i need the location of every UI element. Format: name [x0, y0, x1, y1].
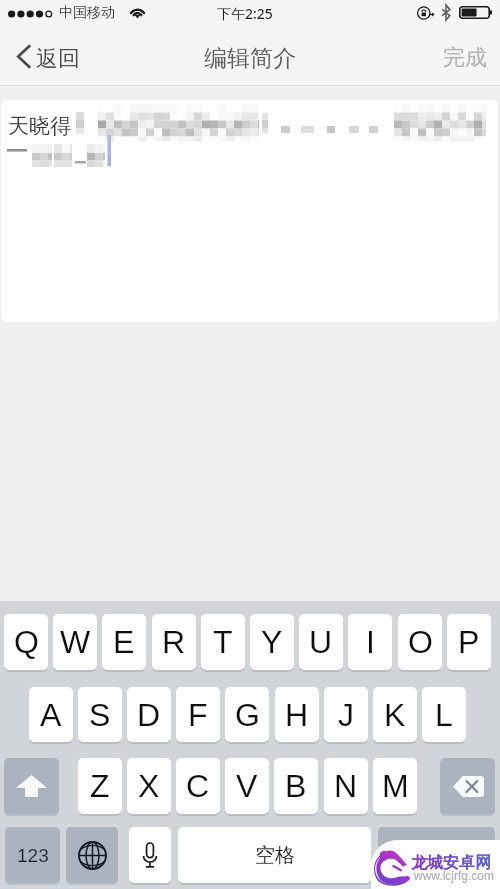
staticText: Y	[261, 624, 283, 660]
staticText: N	[334, 768, 358, 804]
button[interactable]: F	[176, 687, 220, 742]
staticText: V	[236, 768, 258, 804]
staticText: 龙城安卓网	[411, 853, 491, 873]
staticText: 完成	[443, 44, 487, 72]
button[interactable]: S	[78, 687, 122, 742]
staticText: S	[89, 697, 111, 733]
staticText: P	[458, 624, 480, 660]
staticText: E	[113, 624, 135, 660]
staticText: 天晓得	[8, 113, 71, 139]
staticText: D	[137, 697, 161, 733]
button[interactable]: Q	[4, 614, 48, 670]
staticText: 123	[17, 845, 49, 866]
button[interactable]: L	[422, 687, 466, 742]
staticText: 返回	[36, 45, 80, 73]
button[interactable]: U	[299, 614, 343, 670]
button[interactable]: Shift	[4, 758, 59, 814]
button[interactable]: Voice input	[129, 827, 171, 883]
staticText: T	[213, 624, 233, 660]
button[interactable]: W	[53, 614, 97, 670]
button[interactable]: G	[225, 687, 269, 742]
button[interactable]: N	[324, 758, 368, 814]
staticText: F	[188, 697, 208, 733]
staticText: 中国移动	[59, 4, 115, 22]
button[interactable]: Back	[0, 31, 86, 85]
button[interactable]: O	[398, 614, 442, 670]
button[interactable]: 天晓得	[1, 100, 498, 322]
staticText: 下午2:25	[217, 4, 273, 23]
staticText: K	[384, 697, 406, 733]
staticText: A	[40, 697, 62, 733]
staticText: W	[60, 624, 91, 660]
button[interactable]: 123	[5, 827, 60, 883]
staticText: L	[435, 697, 453, 733]
staticText: 编辑简介	[204, 44, 296, 73]
button[interactable]: 空格	[178, 827, 371, 883]
staticText: C	[186, 768, 210, 804]
staticText: U	[309, 624, 333, 660]
button[interactable]: A	[29, 687, 73, 742]
staticText: H	[285, 697, 309, 733]
staticText: www.lcjrfg.com	[414, 869, 495, 882]
button[interactable]: B	[274, 758, 318, 814]
button[interactable]: 完成	[428, 31, 500, 85]
staticText: B	[285, 768, 307, 804]
button[interactable]: Y	[250, 614, 294, 670]
staticText: G	[235, 697, 260, 733]
button[interactable]: V	[225, 758, 269, 814]
button[interactable]: M	[373, 758, 417, 814]
staticText: I	[366, 624, 375, 660]
staticText: R	[162, 624, 186, 660]
button[interactable]: Backspace	[440, 758, 495, 814]
button[interactable]: Switch keyboard	[66, 827, 118, 883]
staticText: Q	[14, 624, 39, 660]
button[interactable]: 换行	[378, 827, 495, 883]
button[interactable]: C	[176, 758, 220, 814]
button[interactable]: X	[127, 758, 171, 814]
button[interactable]: D	[127, 687, 171, 742]
button[interactable]: I	[348, 614, 392, 670]
staticText: X	[138, 768, 160, 804]
staticText: 换行	[418, 843, 456, 867]
button[interactable]: R	[152, 614, 196, 670]
button[interactable]: E	[102, 614, 146, 670]
button[interactable]: J	[324, 687, 368, 742]
staticText: M	[382, 768, 409, 804]
staticText: O	[408, 624, 433, 660]
button[interactable]: T	[201, 614, 245, 670]
button[interactable]: K	[373, 687, 417, 742]
button[interactable]: Z	[78, 758, 122, 814]
button[interactable]: H	[275, 687, 319, 742]
staticText: J	[338, 697, 354, 733]
button[interactable]: P	[447, 614, 491, 670]
staticText: 空格	[255, 843, 295, 868]
staticText: Z	[90, 768, 110, 804]
